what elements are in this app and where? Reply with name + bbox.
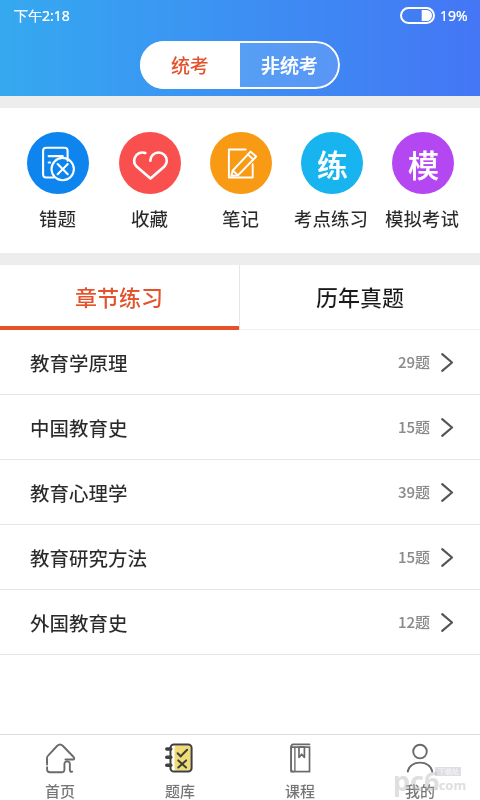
button[interactable]: 错题: [12, 108, 104, 253]
staticText: 考点练习: [294, 205, 369, 232]
staticText: 教育研究方法: [30, 543, 148, 571]
button[interactable]: 题库: [120, 735, 240, 800]
staticText: 章节练习: [75, 280, 164, 312]
staticText: 课程: [285, 780, 316, 800]
button[interactable]: 教育学原理: [0, 330, 480, 394]
button[interactable]: 教育研究方法: [0, 525, 480, 589]
staticText: 29题: [398, 351, 431, 373]
staticText: 题库: [165, 780, 196, 800]
staticText: 外国教育史: [30, 608, 128, 636]
staticText: 收藏: [131, 205, 169, 232]
staticText: 统考: [171, 51, 210, 79]
staticText: 错题: [39, 205, 77, 232]
button[interactable]: 历年真题: [240, 265, 480, 330]
staticText: 教育学原理: [30, 348, 128, 376]
staticText: 中国教育史: [30, 413, 128, 441]
button[interactable]: 我的: [360, 735, 480, 800]
button[interactable]: 教育心理学: [0, 460, 480, 524]
staticText: pc6: [393, 762, 440, 799]
button[interactable]: 章节练习: [0, 265, 239, 330]
button[interactable]: 笔记: [195, 108, 286, 253]
staticText: 下午2:18: [14, 6, 70, 25]
button[interactable]: 课程: [240, 735, 360, 800]
staticText: 我的: [405, 780, 436, 800]
staticText: 历年真题: [316, 280, 405, 312]
staticText: .com: [435, 776, 467, 794]
button[interactable]: 中国教育史: [0, 395, 480, 459]
button[interactable]: 非统考: [240, 41, 340, 89]
staticText: 笔记: [222, 205, 260, 232]
staticText: 15题: [398, 546, 431, 568]
staticText: 非统考: [261, 51, 319, 79]
staticText: 15题: [398, 416, 431, 438]
staticText: 教育心理学: [30, 478, 128, 506]
button[interactable]: 练: [286, 108, 377, 253]
button[interactable]: 首页: [0, 735, 120, 800]
button[interactable]: 模: [377, 108, 468, 253]
staticText: 首页: [45, 780, 76, 800]
button[interactable]: 统考: [140, 41, 240, 89]
button[interactable]: 收藏: [104, 108, 195, 253]
staticText: 练: [317, 141, 348, 186]
button[interactable]: 外国教育史: [0, 590, 480, 654]
staticText: 12题: [398, 611, 431, 633]
staticText: 39题: [398, 481, 431, 503]
staticText: 模: [408, 141, 439, 186]
staticText: 模拟考试: [385, 205, 460, 232]
staticText: 下载站: [438, 767, 459, 776]
staticText: 19%: [440, 6, 468, 25]
